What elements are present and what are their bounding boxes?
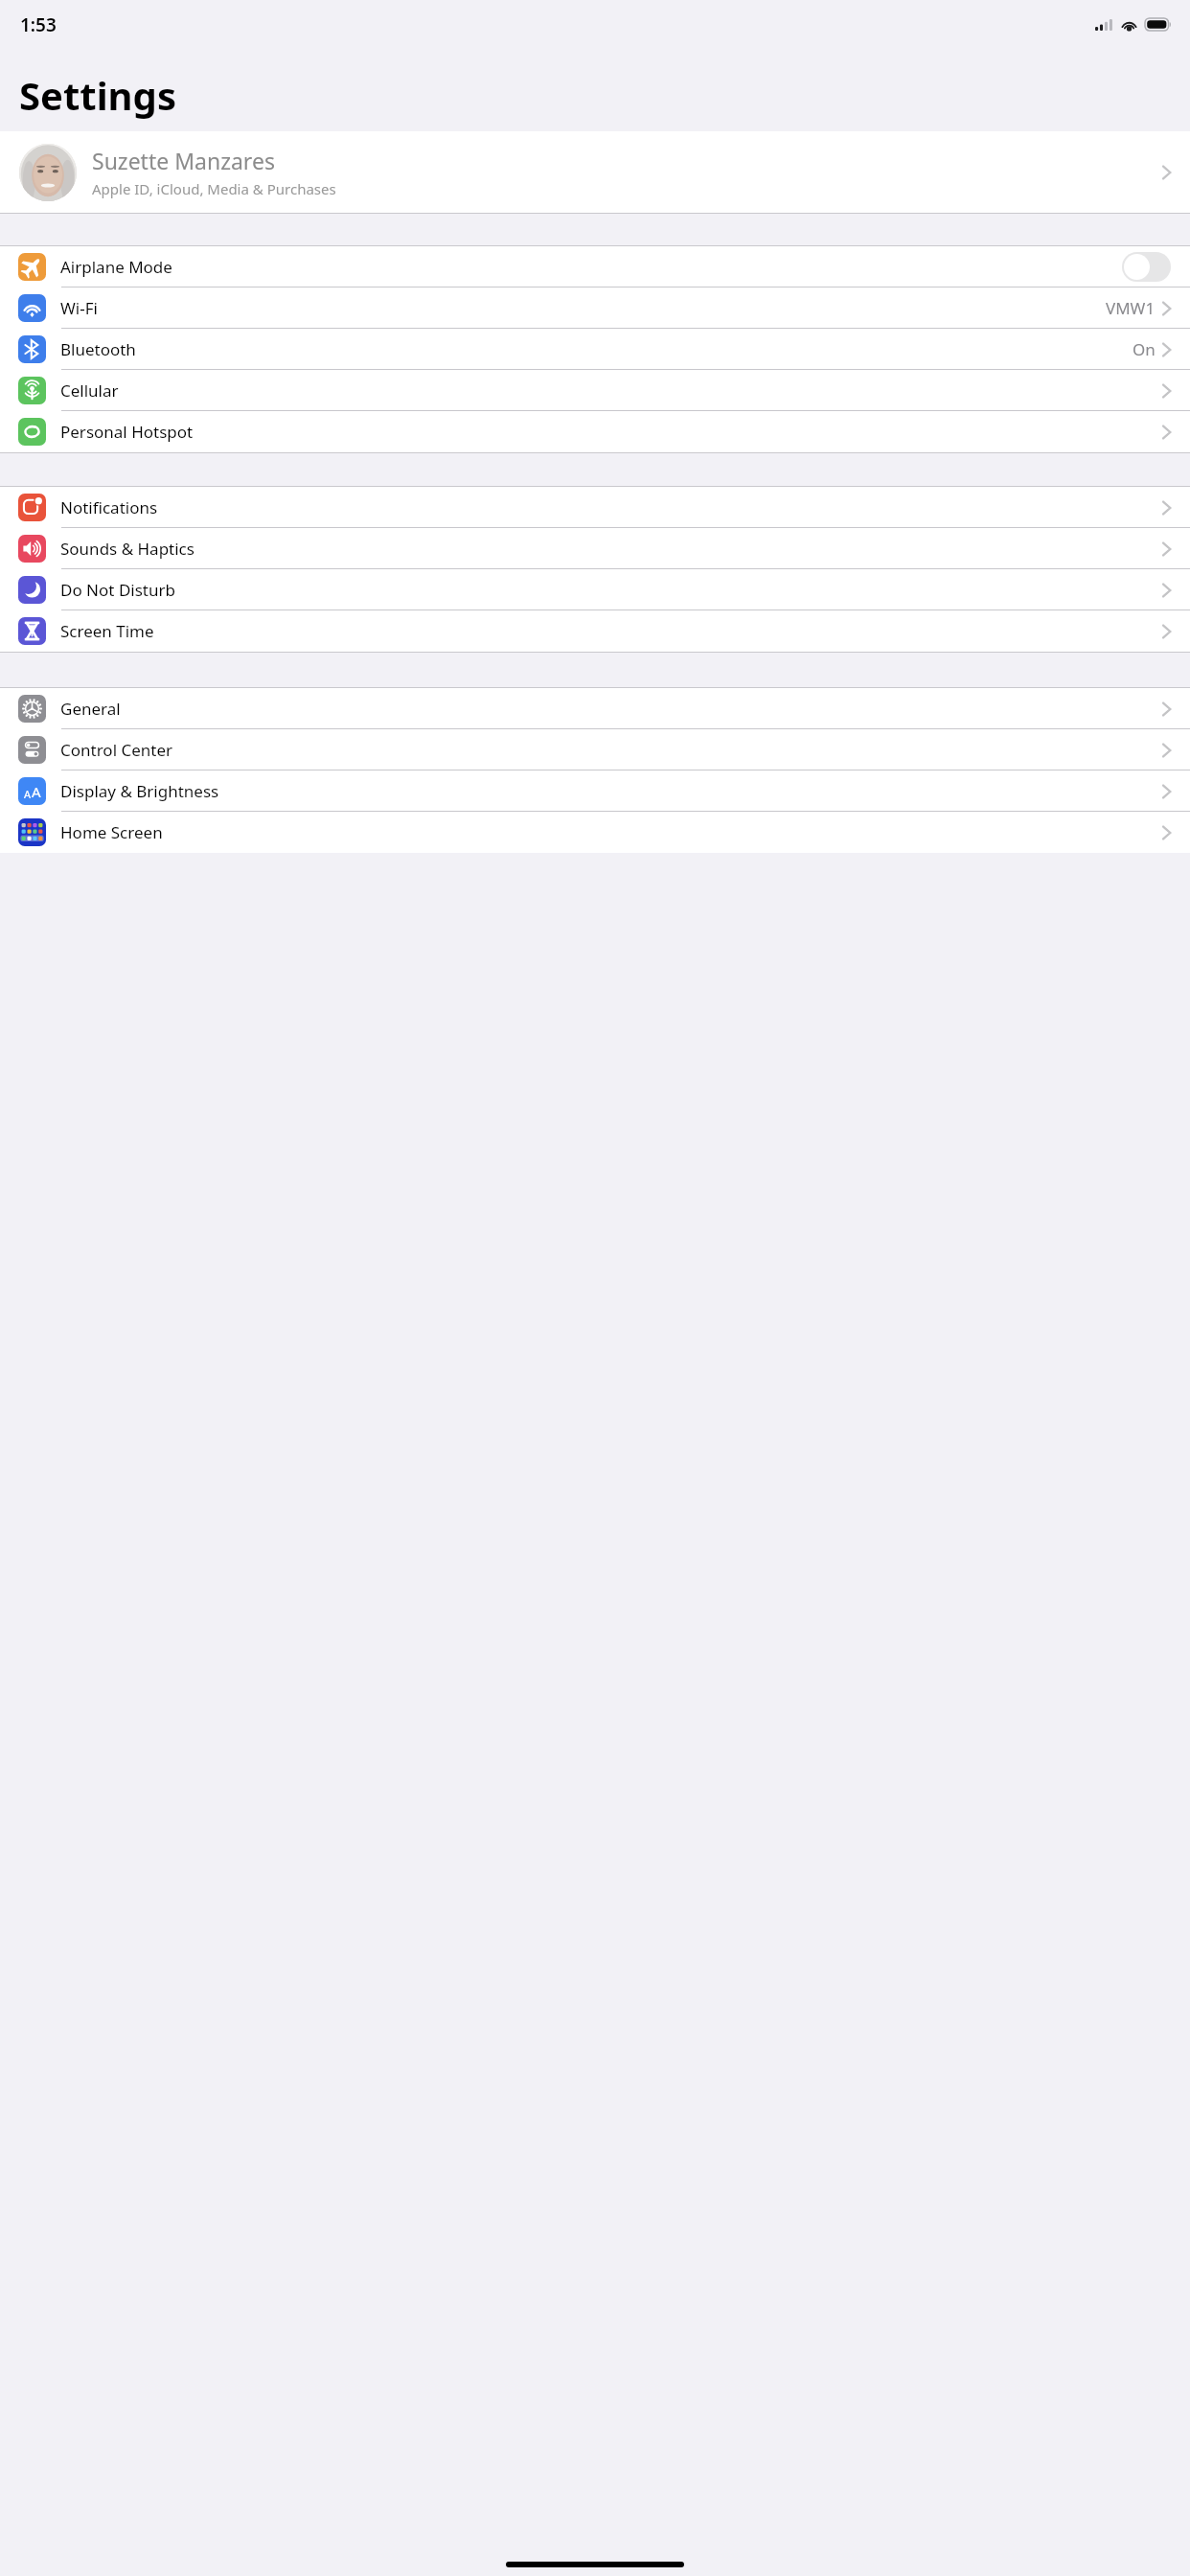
- staticText: VMW1: [1106, 297, 1156, 319]
- button[interactable]: Bluetooth: [0, 329, 1190, 370]
- staticText: Screen Time: [60, 620, 1162, 642]
- staticText: Settings: [19, 69, 176, 121]
- button[interactable]: Screen Time: [0, 610, 1190, 652]
- staticText: 1:53: [20, 12, 57, 37]
- button[interactable]: Cellular: [0, 370, 1190, 411]
- staticText: Apple ID, iCloud, Media & Purchases: [92, 179, 336, 198]
- staticText: A: [32, 782, 41, 801]
- button[interactable]: Wi-Fi: [0, 287, 1190, 329]
- button[interactable]: Control Center: [0, 729, 1190, 770]
- button[interactable]: Sounds & Haptics: [0, 528, 1190, 569]
- staticText: Wi-Fi: [60, 297, 1106, 319]
- button[interactable]: General: [0, 688, 1190, 729]
- staticText: Suzette Manzares: [92, 146, 275, 175]
- staticText: Bluetooth: [60, 338, 1133, 360]
- staticText: Do Not Disturb: [60, 579, 1162, 601]
- button[interactable]: Airplane Mode toggle: [1122, 252, 1171, 282]
- staticText: On: [1133, 338, 1156, 360]
- button[interactable]: Home Screen: [0, 812, 1190, 853]
- staticText: Airplane Mode: [60, 256, 1122, 278]
- staticText: Display & Brightness: [60, 780, 1162, 802]
- button[interactable]: Personal Hotspot: [0, 411, 1190, 452]
- staticText: A: [24, 787, 32, 801]
- staticText: General: [60, 698, 1162, 720]
- staticText: Notifications: [60, 496, 1162, 518]
- button[interactable]: Do Not Disturb: [0, 569, 1190, 610]
- staticText: Personal Hotspot: [60, 421, 1162, 443]
- button[interactable]: Airplane Mode: [0, 246, 1190, 287]
- staticText: Sounds & Haptics: [60, 538, 1162, 560]
- staticText: Cellular: [60, 379, 1162, 402]
- staticText: Home Screen: [60, 821, 1162, 843]
- staticText: Control Center: [60, 739, 1162, 761]
- button[interactable]: Notifications: [0, 487, 1190, 528]
- button[interactable]: A: [0, 770, 1190, 812]
- button[interactable]: Suzette Manzares: [0, 131, 1190, 213]
